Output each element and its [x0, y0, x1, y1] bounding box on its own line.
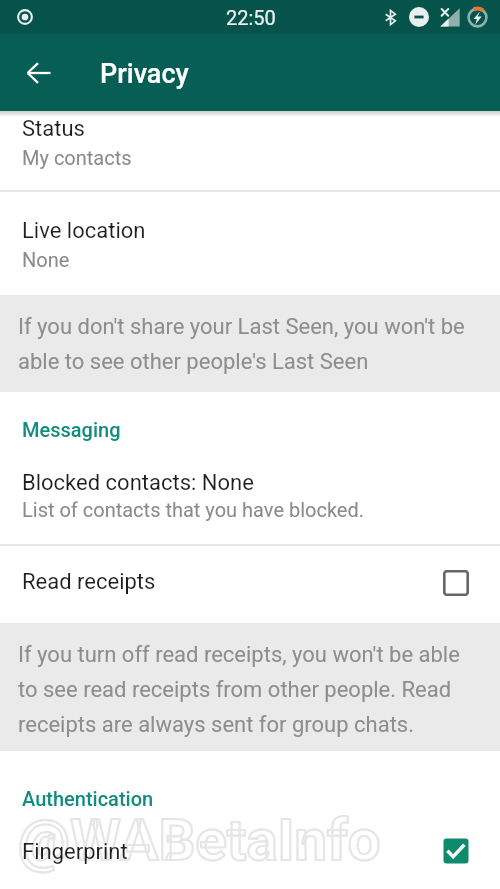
- staticText: Blocked contacts: None: [22, 470, 254, 496]
- staticText: Authentication: [22, 787, 154, 810]
- staticText: @WABetaInfo: [18, 806, 381, 874]
- staticText: Fingerprint: [22, 839, 128, 865]
- button[interactable]: Blocked contacts: None: [0, 450, 500, 545]
- button[interactable]: Unchecked: [443, 570, 469, 596]
- button[interactable]: Status: [0, 110, 500, 191]
- staticText: If you don't share your Last Seen, you w…: [18, 314, 480, 375]
- staticText: List of contacts that you have blocked.: [22, 498, 365, 521]
- button[interactable]: Live location: [0, 192, 500, 295]
- button[interactable]: Checked: [443, 838, 469, 864]
- staticText: Privacy: [100, 58, 189, 90]
- staticText: 22:50: [226, 6, 276, 29]
- button[interactable]: Read receipts: [0, 546, 500, 623]
- staticText: Status: [22, 116, 85, 142]
- staticText: If you turn off read receipts, you won't…: [18, 642, 480, 738]
- staticText: Live location: [22, 218, 146, 244]
- staticText: None: [22, 248, 70, 271]
- button[interactable]: Back: [11, 45, 67, 101]
- staticText: Messaging: [22, 418, 121, 441]
- staticText: My contacts: [22, 146, 132, 169]
- staticText: Read receipts: [22, 569, 156, 595]
- button[interactable]: Fingerprint: [0, 820, 500, 889]
